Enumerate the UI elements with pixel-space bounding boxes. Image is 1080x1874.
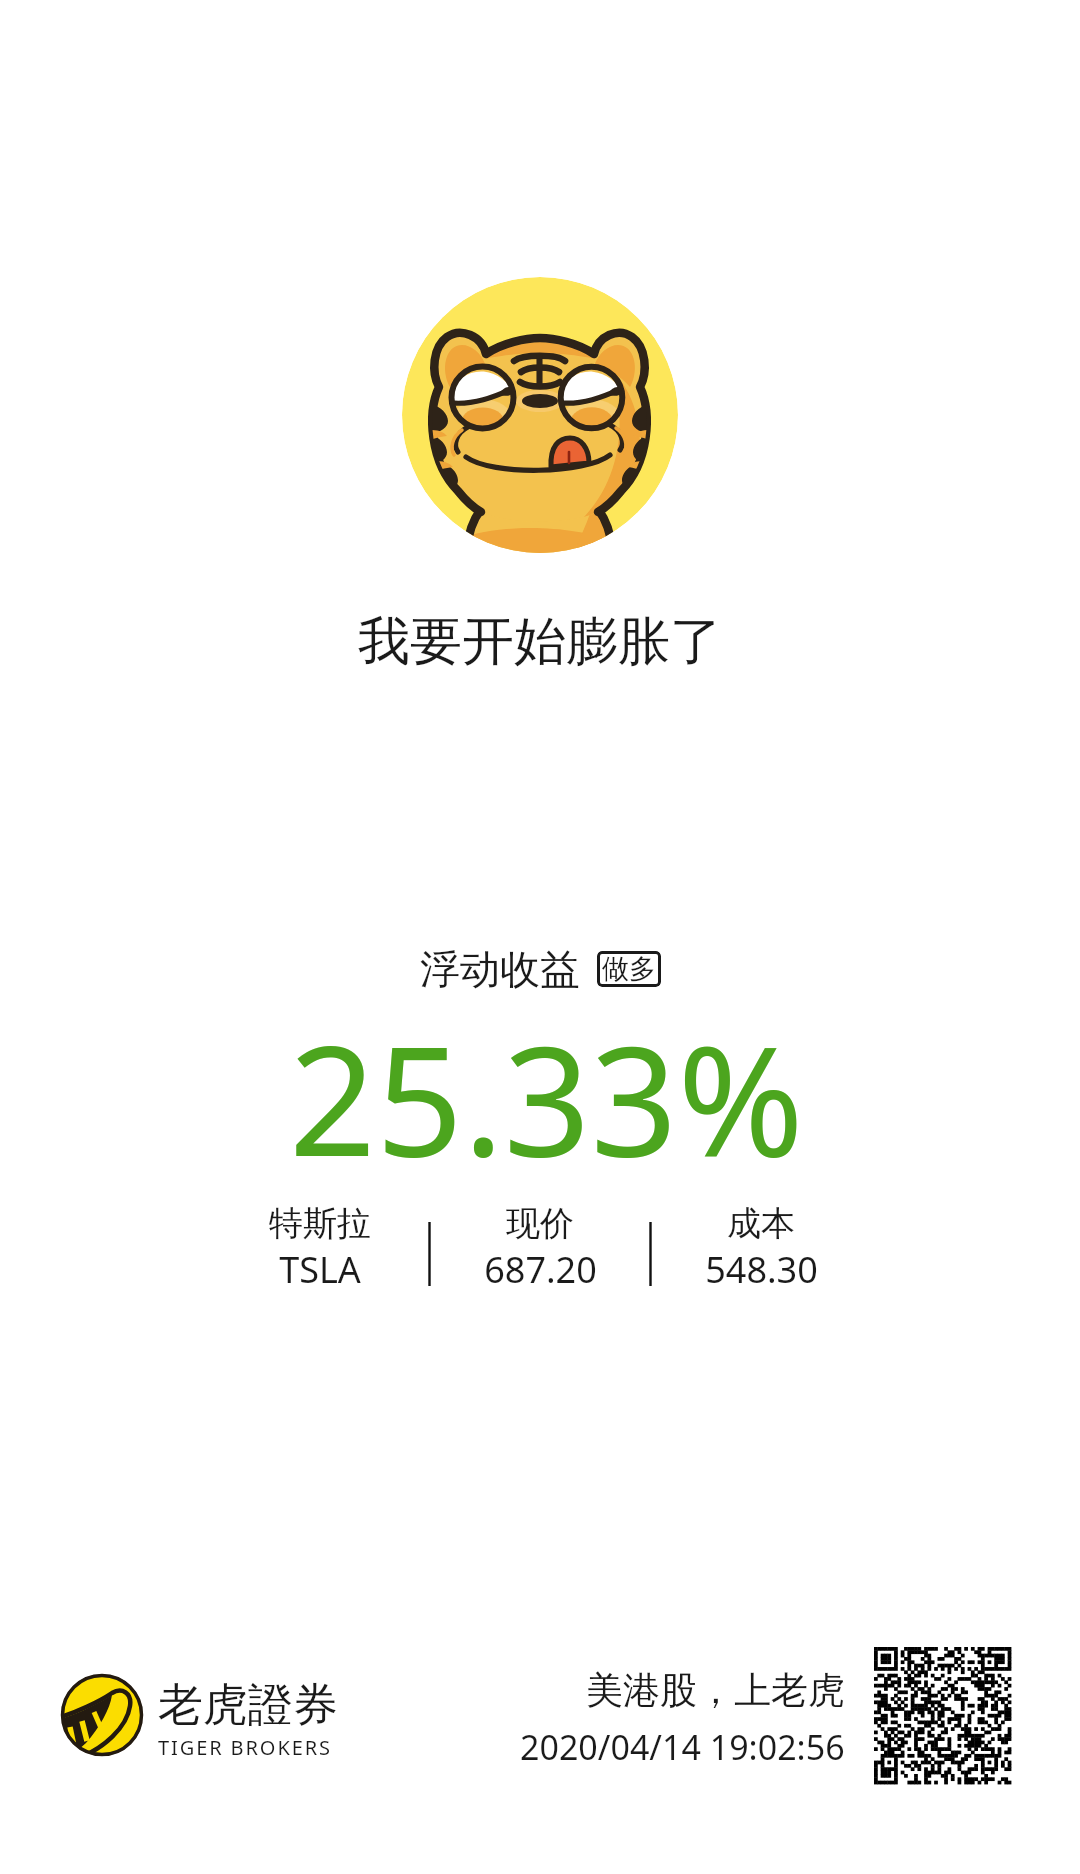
staticText: TSLA <box>279 1245 361 1294</box>
staticText: 浮动收益 <box>420 944 580 994</box>
staticText: 做多 <box>602 952 656 986</box>
button[interactable]: Tiger avatar <box>402 277 678 553</box>
staticText: 老虎證券 <box>158 1677 338 1734</box>
staticText: 687.20 <box>484 1245 597 1294</box>
staticText: 特斯拉 <box>269 1202 371 1245</box>
staticText: 成本 <box>727 1202 795 1245</box>
button[interactable]: 现价 <box>440 1202 640 1294</box>
staticText: 548.30 <box>705 1245 818 1294</box>
staticText: 我要开始膨胀了 <box>358 609 722 675</box>
button[interactable]: Scan QR code to download Tiger Brokers <box>874 1647 1011 1784</box>
staticText: 现价 <box>506 1202 574 1245</box>
button[interactable]: 成本 <box>661 1202 861 1294</box>
staticText: 美港股，上老虎 <box>586 1667 845 1714</box>
staticText: 2020/04/14 19:02:56 <box>520 1724 845 1770</box>
staticText: 25.33% <box>289 994 804 1201</box>
button[interactable]: 做多 <box>597 951 661 987</box>
button[interactable]: Tiger Brokers logo <box>60 1673 144 1757</box>
button[interactable]: 特斯拉 <box>220 1202 420 1294</box>
staticText: TIGER BROKERS <box>158 1734 332 1761</box>
